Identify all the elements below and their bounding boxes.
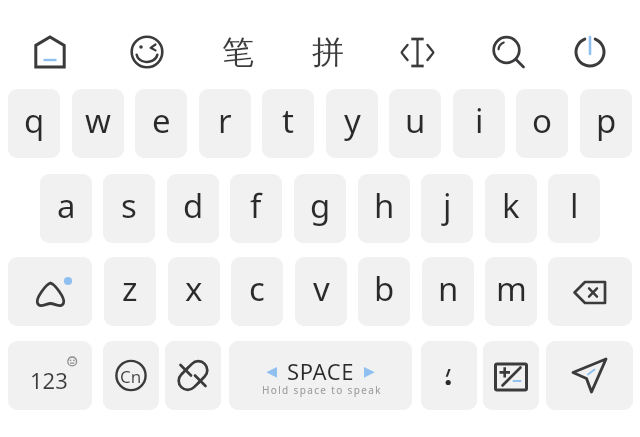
button[interactable]: x [168, 257, 220, 326]
button[interactable]: y [326, 89, 378, 158]
staticText: q [24, 98, 45, 143]
staticText: SPACE [287, 356, 355, 386]
staticText: i [475, 98, 484, 143]
staticText: 123 [30, 365, 68, 395]
button[interactable]: Search [478, 24, 538, 80]
button[interactable]: l [548, 174, 600, 243]
staticText: m [496, 266, 527, 311]
staticText: 拼 [312, 32, 344, 72]
button[interactable]: m [485, 257, 537, 326]
staticText: u [405, 98, 426, 143]
button[interactable]: b [358, 257, 410, 326]
staticText: r [218, 98, 232, 143]
staticText: Cn [120, 365, 142, 388]
button[interactable]: h [358, 174, 410, 243]
button[interactable]: q [8, 89, 60, 158]
button[interactable]: g [294, 174, 346, 243]
button[interactable]: Chinese input mode [103, 341, 159, 410]
button[interactable]: c [231, 257, 283, 326]
staticText: z [122, 266, 138, 311]
button[interactable]: r [199, 89, 251, 158]
button[interactable]: d [167, 174, 219, 243]
button[interactable]: n [422, 257, 474, 326]
button[interactable]: Emoji [117, 24, 177, 80]
button[interactable]: i [453, 89, 505, 158]
button[interactable]: Close keyboard [560, 24, 620, 80]
staticText: x [185, 266, 203, 311]
staticText: 笔 [222, 32, 254, 72]
button[interactable]: o [516, 89, 568, 158]
staticText: j [443, 183, 452, 228]
staticText: v [313, 266, 330, 311]
button[interactable]: j [421, 174, 473, 243]
button[interactable]: v [295, 257, 347, 326]
staticText: d [183, 183, 204, 228]
button[interactable]: Settings [483, 341, 539, 410]
button[interactable]: 笔 [208, 24, 268, 80]
button[interactable]: p [580, 89, 632, 158]
button[interactable]: w [72, 89, 124, 158]
button[interactable]: f [230, 174, 282, 243]
staticText: l [570, 183, 579, 228]
staticText: n [438, 266, 459, 311]
staticText: f [250, 183, 262, 228]
staticText: o [532, 98, 552, 143]
staticText: g [310, 183, 331, 228]
button[interactable]: Clear association [165, 341, 221, 410]
button[interactable]: z [104, 257, 156, 326]
staticText: t [282, 98, 294, 143]
button[interactable]: Send [546, 341, 633, 410]
button[interactable]: e [135, 89, 187, 158]
staticText: e [152, 98, 171, 143]
button[interactable]: u [389, 89, 441, 158]
button[interactable]: Backspace [548, 257, 632, 326]
staticText: y [344, 98, 361, 143]
button[interactable]: t [262, 89, 314, 158]
staticText: k [502, 183, 520, 228]
button[interactable]: Text cursor [387, 24, 447, 80]
staticText: w [85, 98, 111, 143]
button[interactable]: Shift [8, 257, 92, 326]
button[interactable]: Home [20, 24, 80, 80]
staticText: b [374, 266, 395, 311]
button[interactable]: a [40, 174, 92, 243]
button[interactable]: 123 [8, 341, 92, 410]
button[interactable]: SPACE [229, 341, 412, 410]
button[interactable]: 拼 [298, 24, 358, 80]
staticText: h [374, 183, 395, 228]
button[interactable]: s [103, 174, 155, 243]
button[interactable]: k [485, 174, 537, 243]
staticText: s [121, 183, 137, 228]
button[interactable]: Punctuation [421, 341, 477, 410]
staticText: a [57, 183, 76, 228]
staticText: Hold space to speak [262, 383, 382, 397]
staticText: p [596, 98, 617, 143]
staticText: c [249, 266, 265, 311]
